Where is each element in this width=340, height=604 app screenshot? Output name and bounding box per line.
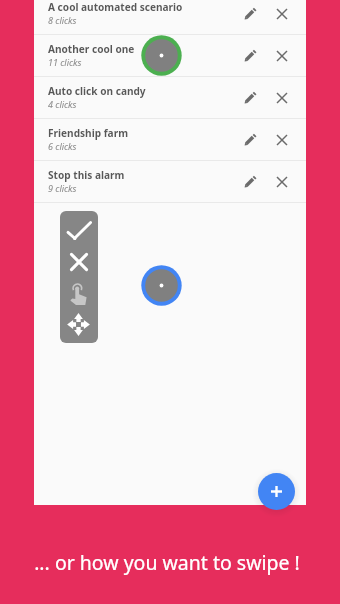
button[interactable]: Delete [266,0,298,34]
button[interactable]: Edit [234,0,266,34]
button[interactable]: Delete [266,161,298,202]
staticText: 9 clicks [48,182,77,194]
button[interactable]: Edit [234,77,266,118]
button[interactable]: Another cool one [34,35,306,77]
staticText: 6 clicks [48,140,77,152]
staticText: 11 clicks [48,56,82,68]
staticText: A cool automated scenario [48,0,183,14]
button[interactable]: Move [60,310,98,343]
button[interactable]: Edit [234,119,266,160]
button[interactable]: Delete [266,77,298,118]
button[interactable]: Confirm [60,211,98,244]
button[interactable]: A cool automated scenario [34,0,306,35]
staticText: 8 clicks [48,14,77,26]
button[interactable]: Cancel [60,244,98,277]
button[interactable]: Tap [60,277,98,310]
button[interactable]: Edit [234,35,266,76]
button[interactable]: Add [258,473,295,510]
button[interactable]: Auto click on candy [34,77,306,119]
button[interactable]: Edit [234,161,266,202]
button[interactable]: Delete [266,119,298,160]
staticText: 4 clicks [48,98,77,110]
button[interactable]: Friendship farm [34,119,306,161]
staticText: Friendship farm [48,126,128,140]
button[interactable]: Delete [266,35,298,76]
staticText: Stop this alarm [48,168,125,182]
staticText: Another cool one [48,42,135,56]
staticText: Auto click on candy [48,84,146,98]
button[interactable]: Stop this alarm [34,161,306,203]
staticText: ... or how you want to swipe ! [34,549,300,576]
